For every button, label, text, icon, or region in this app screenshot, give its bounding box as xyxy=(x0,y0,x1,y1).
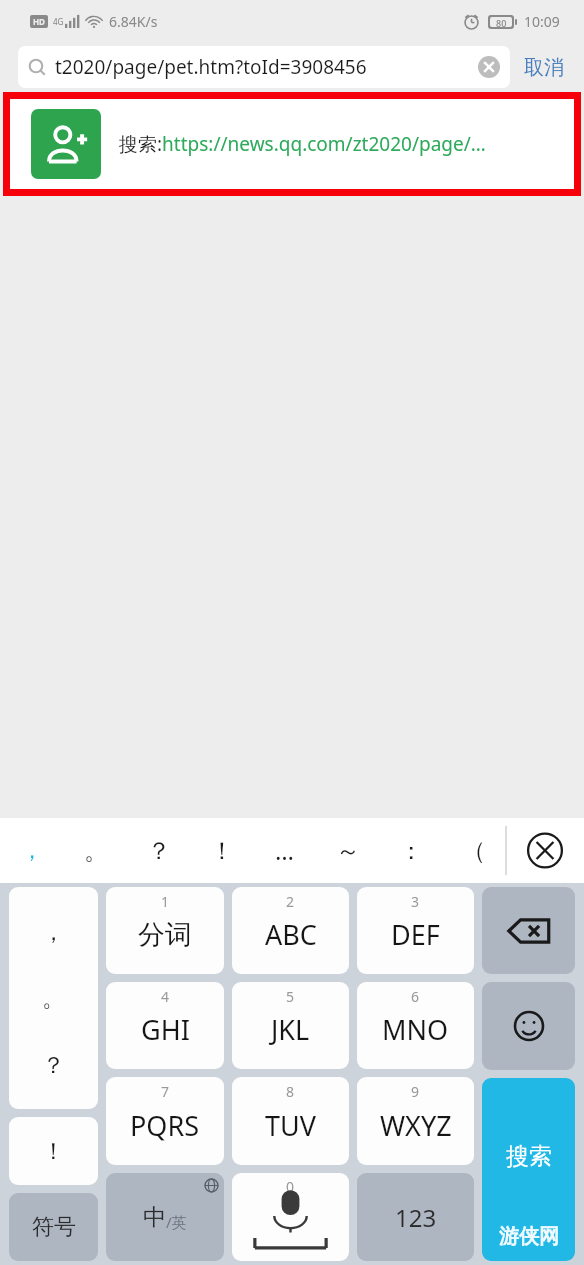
staticText: ？ xyxy=(147,836,171,866)
button[interactable]: ！ xyxy=(9,1117,98,1185)
button[interactable]: 6 xyxy=(357,982,474,1069)
staticText: ， xyxy=(21,837,43,865)
button[interactable]: Backspace xyxy=(482,887,575,974)
staticText: 4 xyxy=(161,987,170,1006)
staticText: PQRS xyxy=(130,1107,200,1144)
staticText: 8 xyxy=(286,1082,295,1101)
staticText: ABC xyxy=(265,916,317,953)
button[interactable]: ？ xyxy=(9,1043,98,1087)
button[interactable]: ， xyxy=(0,818,64,883)
button[interactable]: 。 xyxy=(64,818,127,883)
staticText: JKL xyxy=(271,1011,310,1048)
button[interactable]: 取消 xyxy=(522,49,566,86)
staticText: 9 xyxy=(411,1082,420,1101)
button[interactable]: （ xyxy=(442,818,505,883)
staticText: 分词 xyxy=(138,918,192,952)
button[interactable]: t2020/page/pet.htm?toId=3908456 xyxy=(18,46,510,88)
staticText: 6 xyxy=(411,987,420,1006)
staticText: /英 xyxy=(166,1212,187,1232)
staticText: 123 xyxy=(395,1201,437,1234)
button[interactable]: ， xyxy=(9,910,98,954)
button[interactable]: Clear xyxy=(478,56,500,78)
staticText: 0 xyxy=(286,1177,295,1196)
button[interactable]: 。 xyxy=(9,976,98,1020)
staticText: GHI xyxy=(141,1011,190,1048)
button[interactable]: 符号 xyxy=(9,1193,98,1261)
staticText: WXYZ xyxy=(380,1107,452,1144)
staticText: 取消 xyxy=(524,55,564,80)
button[interactable]: ， xyxy=(9,887,98,1109)
staticText: TUV xyxy=(265,1107,316,1144)
staticText: 符号 xyxy=(32,1213,76,1241)
staticText: ！ xyxy=(42,1137,65,1166)
staticText: 6.84K/s xyxy=(109,12,158,31)
button[interactable]: 1 xyxy=(106,887,224,974)
staticText: 5 xyxy=(286,987,295,1006)
staticText: ～ xyxy=(336,836,360,866)
button[interactable]: 4 xyxy=(106,982,224,1069)
staticText: 10:09 xyxy=(524,12,560,31)
staticText: DEF xyxy=(391,916,440,953)
button[interactable]: ： xyxy=(379,818,442,883)
button[interactable]: 搜索 xyxy=(482,1078,575,1261)
staticText: 7 xyxy=(161,1082,170,1101)
staticText: ！ xyxy=(210,836,234,866)
staticText: 搜索:https://news.qq.com/zt2020/page/… xyxy=(119,131,486,157)
button[interactable]: 3 xyxy=(357,887,474,974)
staticText: 。 xyxy=(42,984,65,1013)
staticText: MNO xyxy=(382,1011,449,1048)
staticText: 80 xyxy=(496,17,507,27)
staticText: ： xyxy=(399,836,423,866)
staticText: HD xyxy=(33,16,45,27)
button[interactable]: Hide keyboard xyxy=(506,818,584,883)
staticText: t2020/page/pet.htm?toId=3908456 xyxy=(55,54,367,80)
staticText: 4G xyxy=(53,16,64,27)
button[interactable]: 9 xyxy=(357,1077,474,1165)
staticText: 2 xyxy=(286,892,295,911)
staticText: （ xyxy=(462,836,486,866)
staticText: 游侠网 xyxy=(499,1224,559,1249)
button[interactable]: ！ xyxy=(190,818,253,883)
staticText: ？ xyxy=(42,1051,65,1080)
button[interactable]: 中 xyxy=(106,1173,224,1261)
staticText: 中 xyxy=(143,1203,166,1232)
button[interactable]: ～ xyxy=(316,818,379,883)
button[interactable]: … xyxy=(253,818,316,883)
button[interactable]: 0 xyxy=(232,1173,349,1261)
button[interactable]: 5 xyxy=(232,982,349,1069)
button[interactable]: 2 xyxy=(232,887,349,974)
button[interactable]: 搜索:https://news.qq.com/zt2020/page/… xyxy=(10,99,574,189)
staticText: 3 xyxy=(411,892,420,911)
staticText: ， xyxy=(42,918,65,947)
button[interactable]: ？ xyxy=(127,818,190,883)
staticText: 。 xyxy=(84,836,108,866)
button[interactable]: Emoji xyxy=(482,982,575,1070)
button[interactable]: 7 xyxy=(106,1077,224,1165)
button[interactable]: 8 xyxy=(232,1077,349,1165)
staticText: 搜索 xyxy=(506,1142,552,1171)
staticText: … xyxy=(275,834,294,867)
staticText: 1 xyxy=(161,892,170,911)
button[interactable]: 123 xyxy=(357,1173,474,1261)
